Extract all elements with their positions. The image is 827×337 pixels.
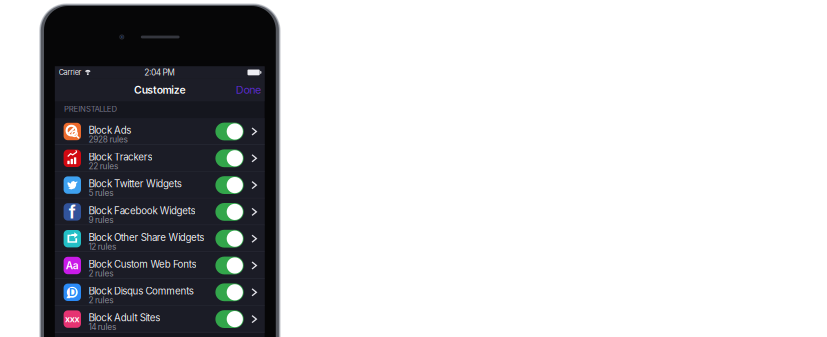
staticText: 14 rules bbox=[88, 322, 116, 332]
staticText: 2:04 PM bbox=[144, 67, 175, 77]
staticText: D bbox=[69, 286, 76, 298]
staticText: Block Ads bbox=[88, 124, 131, 136]
button[interactable]: xxx bbox=[55, 306, 265, 332]
staticText: 9 rules bbox=[88, 215, 113, 225]
staticText: 5 rules bbox=[88, 188, 113, 198]
staticText: Block Disqus Comments bbox=[88, 285, 194, 297]
button[interactable]: D bbox=[55, 279, 265, 306]
staticText: 2928 rules bbox=[88, 134, 128, 144]
staticText: Block Custom Web Fonts bbox=[88, 258, 196, 270]
button[interactable]: f bbox=[55, 198, 265, 225]
button[interactable]: Aa bbox=[55, 252, 265, 279]
staticText: PREINSTALLED bbox=[64, 104, 118, 113]
staticText: xxx bbox=[65, 314, 80, 324]
staticText: Done bbox=[236, 83, 261, 96]
staticText: Block Facebook Widgets bbox=[88, 205, 195, 216]
staticText: 2 rules bbox=[88, 295, 113, 305]
staticText: 22 rules bbox=[88, 161, 118, 171]
staticText: f bbox=[69, 202, 76, 223]
staticText: Block Trackers bbox=[88, 151, 152, 163]
button[interactable]: Block Twitter Widgets bbox=[55, 172, 265, 198]
staticText: 12 rules bbox=[88, 242, 116, 252]
staticText: Block Other Share Widgets bbox=[88, 231, 204, 243]
button[interactable]: Block Other Share Widgets bbox=[55, 225, 265, 252]
staticText: Block Twitter Widgets bbox=[88, 178, 182, 190]
button[interactable]: Block Ads bbox=[55, 118, 265, 145]
staticText: Customize bbox=[134, 83, 185, 96]
button[interactable]: Block Trackers bbox=[55, 145, 265, 172]
staticText: Block Adult Sites bbox=[88, 312, 160, 324]
staticText: Aa bbox=[66, 259, 79, 272]
button[interactable]: Done bbox=[226, 78, 265, 101]
staticText: 2 rules bbox=[88, 268, 113, 278]
staticText: Carrier bbox=[59, 68, 82, 77]
